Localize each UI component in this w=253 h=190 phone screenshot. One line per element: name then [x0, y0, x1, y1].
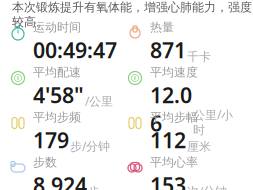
staticText: 运动时间 [33, 20, 81, 35]
staticText: 平均速度 [150, 65, 198, 80]
staticText: 平均心率 [150, 155, 198, 170]
staticText: 平均步频 [33, 110, 81, 125]
staticText: 热量 [150, 20, 174, 35]
staticText: 本次锻炼提升有氧体能，增强心肺能力，强度较高。 [12, 0, 252, 29]
staticText: 步 [88, 184, 100, 190]
button[interactable]: 平均步幅 [127, 110, 244, 150]
staticText: 12.06 [150, 81, 192, 137]
staticText: 步数 [33, 155, 57, 170]
staticText: 179 [33, 126, 69, 154]
staticText: 次/分钟 [187, 183, 227, 190]
button[interactable]: 平均心率 [127, 155, 244, 190]
button[interactable]: 热量 [127, 20, 244, 60]
staticText: 厘米 [187, 139, 211, 154]
staticText: 8,924 [33, 171, 87, 190]
staticText: 00:49:47 [33, 36, 117, 64]
button[interactable]: 平均配速 [10, 65, 127, 105]
button[interactable]: 运动时间 [10, 20, 127, 60]
staticText: 公里/小时 [193, 107, 233, 137]
staticText: 4'58" [33, 81, 84, 109]
staticText: 153 [150, 171, 186, 190]
staticText: 千卡 [187, 49, 211, 64]
staticText: 871 [150, 36, 186, 64]
staticText: 平均配速 [33, 65, 81, 80]
button[interactable]: 步数 [10, 155, 127, 190]
staticText: 步/分钟 [70, 138, 110, 154]
button[interactable]: 平均步频 [10, 110, 127, 150]
button[interactable]: 平均速度 [127, 65, 244, 105]
staticText: 112 [150, 126, 186, 154]
staticText: 平均步幅 [150, 110, 198, 125]
staticText: /公里 [85, 93, 113, 109]
